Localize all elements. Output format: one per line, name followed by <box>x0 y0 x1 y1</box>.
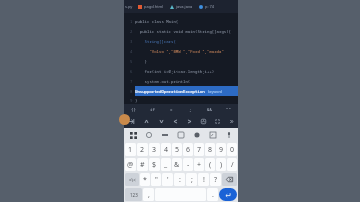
button[interactable]: - <box>183 158 193 171</box>
button[interactable]: _ <box>161 158 171 171</box>
button[interactable]: 4 <box>161 143 171 156</box>
staticText: : <box>179 175 181 185</box>
button[interactable]: = <box>162 104 181 115</box>
button[interactable]: Stickers <box>189 128 205 142</box>
staticText: 4 <box>130 49 133 54</box>
staticText: 7 <box>130 79 133 84</box>
button[interactable]: ' <box>162 173 173 186</box>
button[interactable]: Themes <box>205 128 221 142</box>
button[interactable]: # <box>137 158 148 171</box>
staticText: ' <box>167 175 169 185</box>
staticText: {} <box>131 107 136 112</box>
button[interactable]: 3 <box>149 143 160 156</box>
staticText: = <box>170 107 173 112</box>
button[interactable]: =\< <box>125 173 139 186</box>
button[interactable]: if <box>143 104 162 115</box>
staticText: ? <box>214 175 218 185</box>
staticText: 123 <box>130 192 138 198</box>
staticText: 6 <box>130 69 133 74</box>
staticText: 4 <box>164 145 169 155</box>
staticText: "" <box>226 107 231 112</box>
staticText: if <box>150 107 155 112</box>
button[interactable]: Clipboard <box>157 128 173 142</box>
button[interactable]: Translate <box>173 128 189 142</box>
button[interactable]: 5 <box>172 143 182 156</box>
staticText: 9 <box>130 98 133 103</box>
button[interactable]: * <box>140 173 150 186</box>
button[interactable]: 0 <box>227 143 237 156</box>
staticText: 1 <box>128 145 133 155</box>
button[interactable]: Fullscreen <box>210 115 224 128</box>
staticText: && <box>207 107 212 112</box>
button[interactable]: @ <box>125 158 136 171</box>
button[interactable]: Up <box>139 115 154 128</box>
button[interactable]: $ <box>149 158 160 171</box>
button[interactable]: pagd.html <box>135 4 167 9</box>
button[interactable]: Backspace <box>222 173 237 186</box>
staticText: * <box>143 175 147 185</box>
button[interactable]: 7 <box>194 143 204 156</box>
staticText: / <box>231 160 234 170</box>
button[interactable]: && <box>200 104 219 115</box>
button[interactable]: More <box>224 115 238 128</box>
button[interactable]: ) <box>216 158 226 171</box>
staticText: for(int i=0;i<car.length;i++) <box>135 69 215 74</box>
button[interactable]: 8 <box>205 143 215 156</box>
staticText: 6 <box>186 145 191 155</box>
button[interactable]: Select all <box>196 115 210 128</box>
button[interactable]: 1 <box>125 143 136 156</box>
staticText: @ <box>127 160 134 170</box>
button[interactable]: ; <box>181 104 200 115</box>
button[interactable]: + <box>194 158 204 171</box>
staticText: 2 <box>130 29 133 34</box>
staticText: UnsupportedOperationException <box>135 89 205 94</box>
button[interactable]: & <box>172 158 182 171</box>
button[interactable]: Left <box>168 115 182 128</box>
button[interactable]: , <box>143 188 154 201</box>
button[interactable]: Tab <box>124 115 139 128</box>
button[interactable]: "" <box>219 104 238 115</box>
button[interactable]: 123 <box>125 188 142 201</box>
button[interactable]: : <box>174 173 185 186</box>
staticText: + <box>197 160 202 170</box>
button[interactable]: 9 <box>216 143 226 156</box>
button[interactable]: ? <box>210 173 221 186</box>
staticText: 7 <box>197 145 202 155</box>
button[interactable]: ; <box>186 173 197 186</box>
staticText: public static void main(String[]args){ <box>135 29 231 34</box>
button[interactable]: Down <box>154 115 168 128</box>
button[interactable]: Right <box>182 115 196 128</box>
staticText: ; <box>189 107 192 112</box>
button[interactable]: Apps <box>125 128 141 142</box>
button[interactable]: ( <box>205 158 215 171</box>
button[interactable]: 6 <box>183 143 193 156</box>
button[interactable]: . <box>207 188 218 201</box>
staticText: keyword <box>208 89 222 94</box>
button[interactable]: / <box>227 158 237 171</box>
button[interactable]: " <box>151 173 161 186</box>
staticText: . <box>212 190 214 200</box>
staticText: java.java <box>176 4 193 9</box>
button[interactable]: p: 74 <box>196 4 218 9</box>
staticText: 2 <box>140 145 145 155</box>
staticText: s.py <box>125 4 133 9</box>
button[interactable]: {} <box>124 104 143 115</box>
staticText: - <box>187 160 190 170</box>
staticText: , <box>148 190 150 200</box>
staticText: ) <box>220 160 223 170</box>
button[interactable]: Enter <box>219 188 237 201</box>
staticText: 1 <box>130 19 133 24</box>
button[interactable]: GIFs <box>141 128 157 142</box>
staticText: _ <box>164 160 168 170</box>
staticText: " <box>155 175 158 185</box>
button[interactable]: ! <box>198 173 209 186</box>
button[interactable]: Voice input <box>221 128 237 142</box>
button[interactable]: java.java <box>167 4 196 9</box>
staticText: 3 <box>130 39 133 44</box>
staticText: String[]cars{ <box>135 39 176 44</box>
staticText: ; <box>191 175 193 185</box>
button[interactable]: 2 <box>137 143 148 156</box>
staticText: 8 <box>130 89 133 94</box>
button[interactable]: s.py <box>124 4 135 9</box>
